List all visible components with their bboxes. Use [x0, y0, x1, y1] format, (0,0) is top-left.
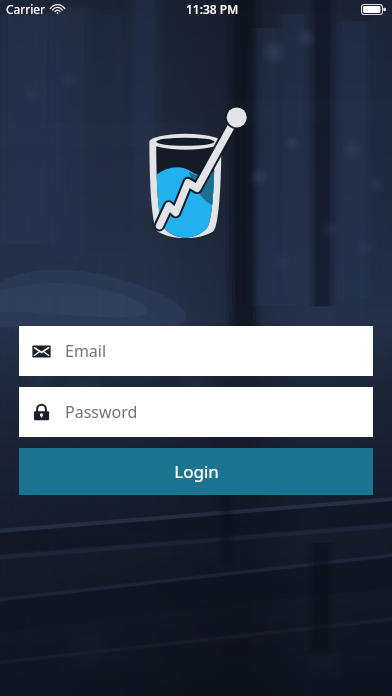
staticText: Carrier	[6, 1, 46, 17]
other: Wi-Fi signal	[51, 4, 64, 14]
staticText: 11:38 PM	[186, 1, 239, 17]
button[interactable]: Login	[19, 448, 373, 495]
button[interactable]: Password input field	[19, 387, 373, 437]
staticText: Login	[174, 460, 219, 483]
button[interactable]: Email input field	[19, 326, 373, 376]
other: Battery	[361, 4, 386, 15]
staticText: Email	[65, 340, 107, 362]
staticText: Password	[65, 401, 138, 423]
